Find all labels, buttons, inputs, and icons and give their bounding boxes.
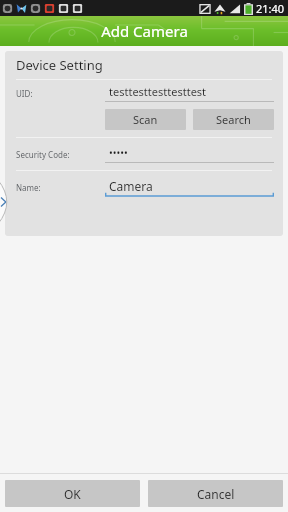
button[interactable]: Open side panel: [0, 180, 10, 224]
button[interactable]: Scan: [105, 109, 186, 130]
button[interactable]: Search: [193, 109, 274, 130]
staticText: Device Setting: [16, 56, 103, 74]
staticText: Security Code:: [16, 149, 105, 160]
staticText: •••••: [109, 146, 128, 160]
button[interactable]: Cancel: [148, 480, 283, 507]
staticText: Name:: [16, 182, 105, 193]
button[interactable]: OK: [5, 480, 140, 507]
staticText: OK: [64, 486, 81, 502]
staticText: UID:: [16, 88, 105, 99]
staticText: Search: [216, 112, 251, 127]
staticText: Camera: [109, 178, 153, 194]
staticText: Add Camera: [101, 21, 188, 41]
staticText: Scan: [133, 112, 158, 127]
staticText: Cancel: [197, 486, 235, 502]
staticText: 21:40: [256, 1, 285, 16]
staticText: testtesttesttesttest: [109, 84, 207, 99]
